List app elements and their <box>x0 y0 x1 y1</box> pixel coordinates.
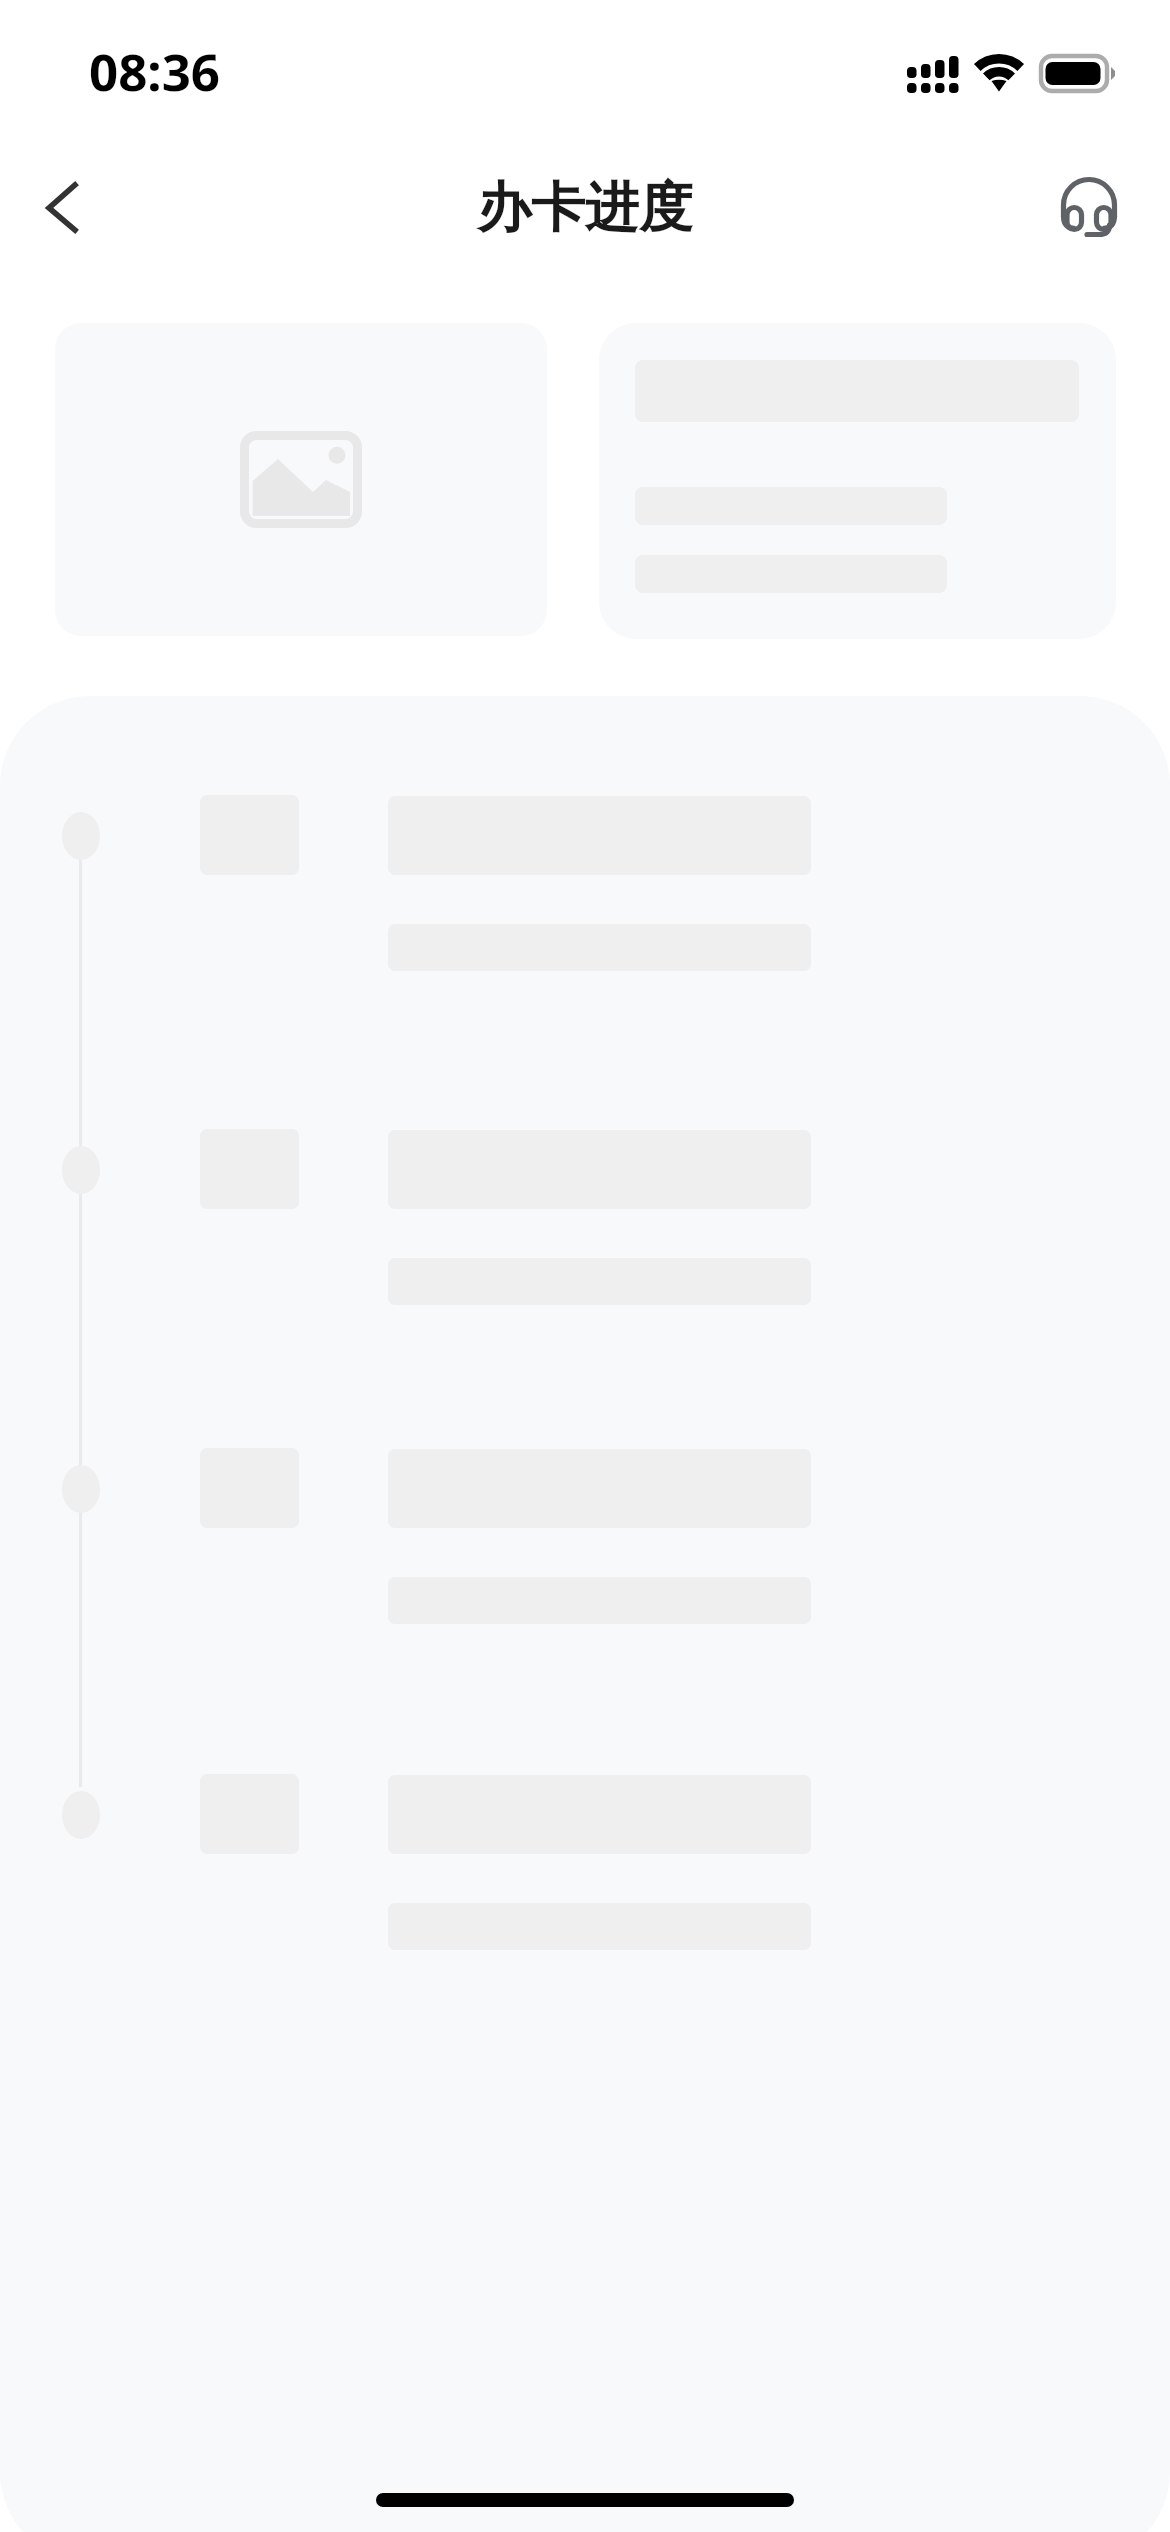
button[interactable]: Customer service <box>1049 165 1129 245</box>
button[interactable]: Application step <box>0 1429 1170 1644</box>
button[interactable]: Application step <box>0 776 1170 991</box>
button[interactable]: Back <box>10 150 120 260</box>
staticText: 办卡进度 <box>0 174 1170 242</box>
button[interactable]: Application step <box>0 1755 1170 1970</box>
staticText: 08:36 <box>89 36 221 105</box>
button[interactable] <box>599 323 1116 639</box>
button[interactable] <box>55 323 547 636</box>
button[interactable]: Application step <box>0 1110 1170 1325</box>
